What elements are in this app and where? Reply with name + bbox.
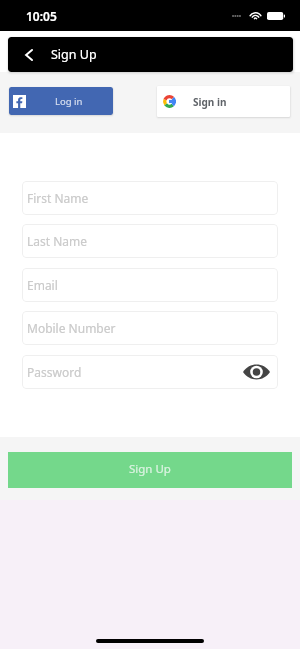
button[interactable]: Mobile Number [22, 311, 278, 345]
staticText: First Name [27, 190, 89, 206]
staticText: Password [27, 364, 82, 380]
staticText: Sign in [193, 95, 227, 109]
button[interactable]: Password [22, 355, 278, 389]
button[interactable]: Last Name [22, 224, 278, 258]
staticText: Email [27, 277, 58, 293]
staticText: Mobile Number [27, 320, 116, 336]
button[interactable]: Back [15, 37, 43, 72]
button[interactable]: Email [22, 268, 278, 302]
button[interactable]: First Name [22, 181, 278, 215]
staticText: Last Name [27, 233, 88, 249]
button[interactable]: Log in [9, 87, 113, 115]
button[interactable]: Sign Up [8, 452, 292, 488]
button[interactable]: Sign in [157, 86, 290, 117]
staticText: Sign Up [51, 46, 97, 63]
staticText: 10:05 [26, 8, 57, 24]
button[interactable]: Show password [241, 360, 271, 384]
staticText: Log in [55, 95, 83, 108]
staticText: Sign Up [129, 461, 171, 477]
